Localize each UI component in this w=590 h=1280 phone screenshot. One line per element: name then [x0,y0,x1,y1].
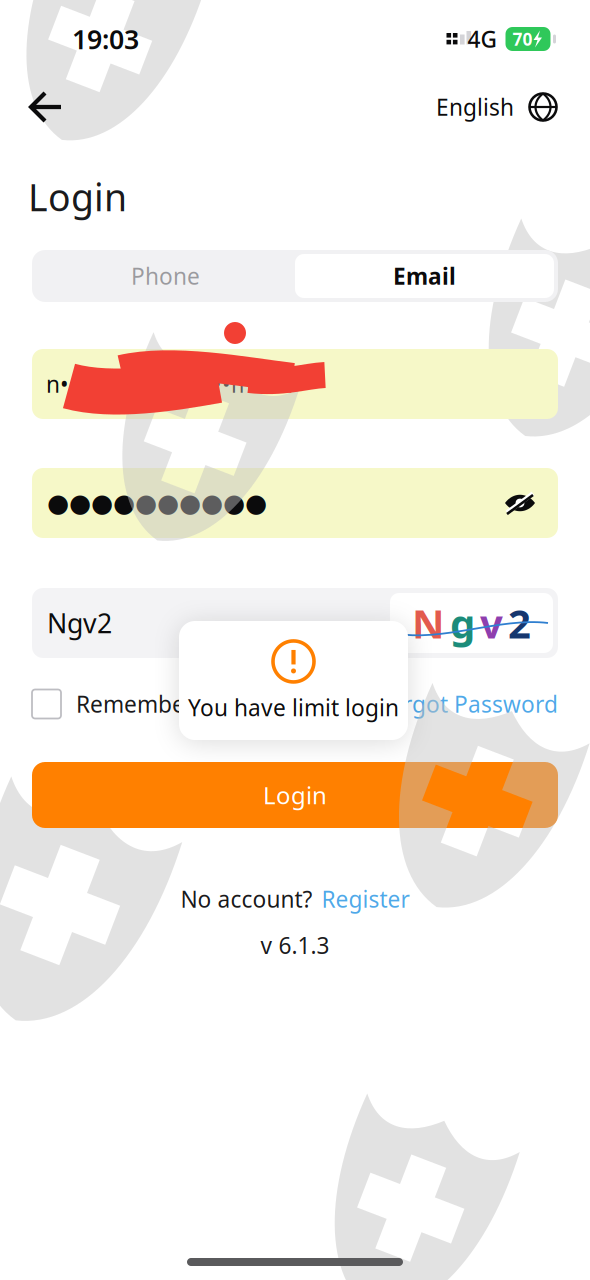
staticText: n•••••••••••••••••••m [46,369,252,399]
staticText: English [436,92,514,122]
staticText: No account? [180,884,312,914]
button[interactable]: Remember me [32,689,234,719]
button[interactable]: Register [321,884,409,914]
staticText: You have limit login [188,692,399,722]
staticText: 19:03 [72,21,139,57]
staticText: Register [321,884,409,914]
staticText: 70 [512,27,532,50]
staticText: Login [263,779,327,811]
staticText: Ngv2 [47,605,112,641]
staticText: Phone [131,261,200,291]
button[interactable]: Refresh captcha [390,593,553,653]
button[interactable]: Back [14,80,78,134]
staticText: Forgot Password [377,689,558,719]
staticText: Login [28,172,127,222]
button[interactable]: Email [295,254,554,298]
staticText: N [412,596,445,649]
staticText: Remember me [76,689,234,719]
button[interactable]: Phone [36,254,295,298]
staticText: 4G [467,24,496,54]
staticText: ●●●●●●●●●● [47,489,267,517]
button[interactable]: Show password [494,481,546,524]
staticText: g [450,596,475,649]
button[interactable]: Login [32,762,558,828]
staticText: Email [393,261,456,291]
staticText: 2 [508,596,531,649]
button[interactable]: Forgot Password [377,689,558,719]
button[interactable]: English [426,84,568,130]
staticText: v 6.1.3 [260,930,329,960]
staticText: v [480,596,503,649]
